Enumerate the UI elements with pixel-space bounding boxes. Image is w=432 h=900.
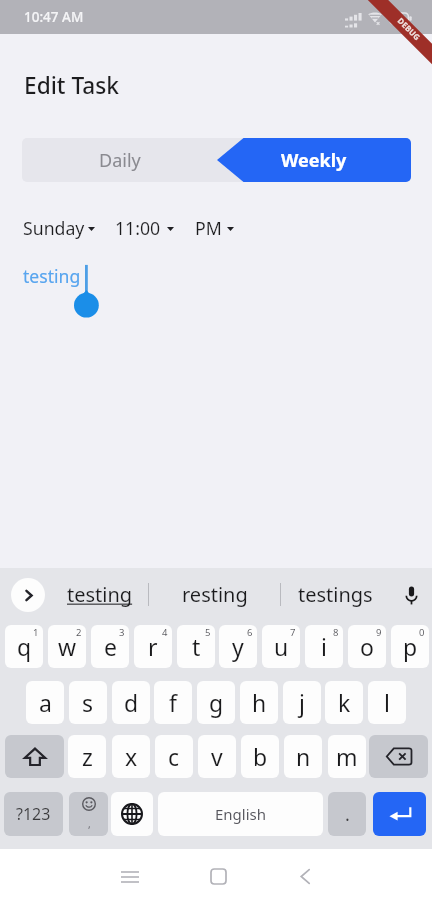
staticText: 3: [119, 626, 125, 639]
button[interactable]: Change language: [111, 792, 153, 836]
button[interactable]: j: [283, 681, 321, 724]
button[interactable]: m: [328, 735, 366, 778]
staticText: 11:00: [115, 216, 161, 240]
staticText: c: [168, 741, 180, 772]
staticText: PM: [195, 216, 222, 240]
button[interactable]: Home: [190, 851, 246, 900]
staticText: Weekly: [281, 148, 347, 173]
button[interactable]: Enter: [373, 792, 426, 836]
staticText: ?123: [16, 803, 51, 825]
staticText: 5: [205, 626, 211, 639]
staticText: t: [192, 631, 201, 662]
staticText: Daily: [99, 148, 141, 173]
staticText: .: [345, 802, 350, 827]
button[interactable]: Voice input: [391, 575, 431, 615]
button[interactable]: English: [158, 792, 323, 836]
staticText: DEBUG: [395, 16, 422, 43]
button[interactable]: Back: [277, 851, 333, 900]
staticText: resting: [182, 581, 248, 608]
staticText: z: [82, 741, 93, 772]
button[interactable]: ?123: [4, 792, 63, 836]
button[interactable]: 11:00: [109, 213, 179, 243]
button[interactable]: testing: [50, 568, 149, 621]
button[interactable]: d: [112, 681, 150, 724]
button[interactable]: y: [219, 625, 257, 668]
staticText: 6: [247, 626, 253, 639]
staticText: English: [215, 804, 267, 824]
button[interactable]: p: [391, 625, 429, 668]
staticText: 0: [419, 626, 425, 639]
button[interactable]: resting: [149, 568, 281, 621]
staticText: m: [336, 741, 358, 772]
button[interactable]: a: [26, 681, 64, 724]
button[interactable]: f: [154, 681, 192, 724]
button[interactable]: z: [68, 735, 106, 778]
staticText: a: [39, 687, 52, 718]
button[interactable]: t: [177, 625, 215, 668]
button[interactable]: Weekly: [217, 138, 411, 182]
button[interactable]: k: [325, 681, 363, 724]
button[interactable]: n: [284, 735, 322, 778]
staticText: testing: [23, 264, 81, 288]
button[interactable]: r: [134, 625, 172, 668]
staticText: 9: [376, 626, 382, 639]
staticText: r: [148, 631, 158, 662]
button[interactable]: w: [48, 625, 86, 668]
button[interactable]: c: [155, 735, 193, 778]
button[interactable]: Daily: [22, 138, 217, 182]
button[interactable]: testings: [281, 568, 390, 621]
staticText: s: [82, 687, 94, 718]
button[interactable]: o: [348, 625, 386, 668]
staticText: h: [252, 687, 267, 718]
staticText: d: [124, 687, 139, 718]
button[interactable]: Recent apps: [102, 851, 158, 900]
button[interactable]: s: [69, 681, 107, 724]
staticText: e: [104, 631, 117, 662]
button[interactable]: g: [197, 681, 235, 724]
staticText: w: [58, 631, 77, 662]
staticText: Edit Task: [24, 70, 120, 101]
staticText: f: [169, 687, 177, 718]
button[interactable]: Backspace: [369, 735, 428, 778]
button[interactable]: Emoji: [69, 792, 108, 836]
staticText: 1: [33, 626, 39, 639]
staticText: testing: [67, 581, 133, 608]
staticText: 10:47 AM: [24, 8, 84, 26]
staticText: l: [384, 687, 390, 718]
button[interactable]: Sunday: [17, 213, 100, 243]
staticText: n: [296, 741, 311, 772]
button[interactable]: l: [368, 681, 406, 724]
staticText: ,: [88, 817, 91, 831]
button[interactable]: .: [328, 792, 366, 836]
staticText: u: [274, 631, 289, 662]
button[interactable]: i: [305, 625, 343, 668]
staticText: q: [17, 631, 32, 662]
staticText: Sunday: [23, 216, 85, 240]
staticText: testings: [298, 581, 373, 608]
staticText: y: [232, 631, 244, 662]
staticText: j: [299, 687, 305, 718]
button[interactable]: v: [198, 735, 236, 778]
button[interactable]: PM: [189, 213, 239, 243]
staticText: b: [253, 741, 268, 772]
staticText: o: [360, 631, 374, 662]
staticText: 2: [76, 626, 82, 639]
button[interactable]: Shift: [5, 735, 64, 778]
button[interactable]: More suggestions: [11, 578, 45, 612]
button[interactable]: b: [241, 735, 279, 778]
button[interactable]: u: [262, 625, 300, 668]
button[interactable]: e: [91, 625, 129, 668]
staticText: k: [338, 687, 351, 718]
button[interactable]: q: [5, 625, 43, 668]
staticText: 8: [333, 626, 339, 639]
staticText: v: [211, 741, 223, 772]
staticText: 7: [290, 626, 296, 639]
staticText: g: [209, 687, 224, 718]
staticText: 4: [162, 626, 168, 639]
button[interactable]: h: [240, 681, 278, 724]
staticText: x: [125, 741, 138, 772]
staticText: p: [403, 631, 418, 662]
button[interactable]: x: [112, 735, 150, 778]
staticText: i: [321, 631, 327, 662]
